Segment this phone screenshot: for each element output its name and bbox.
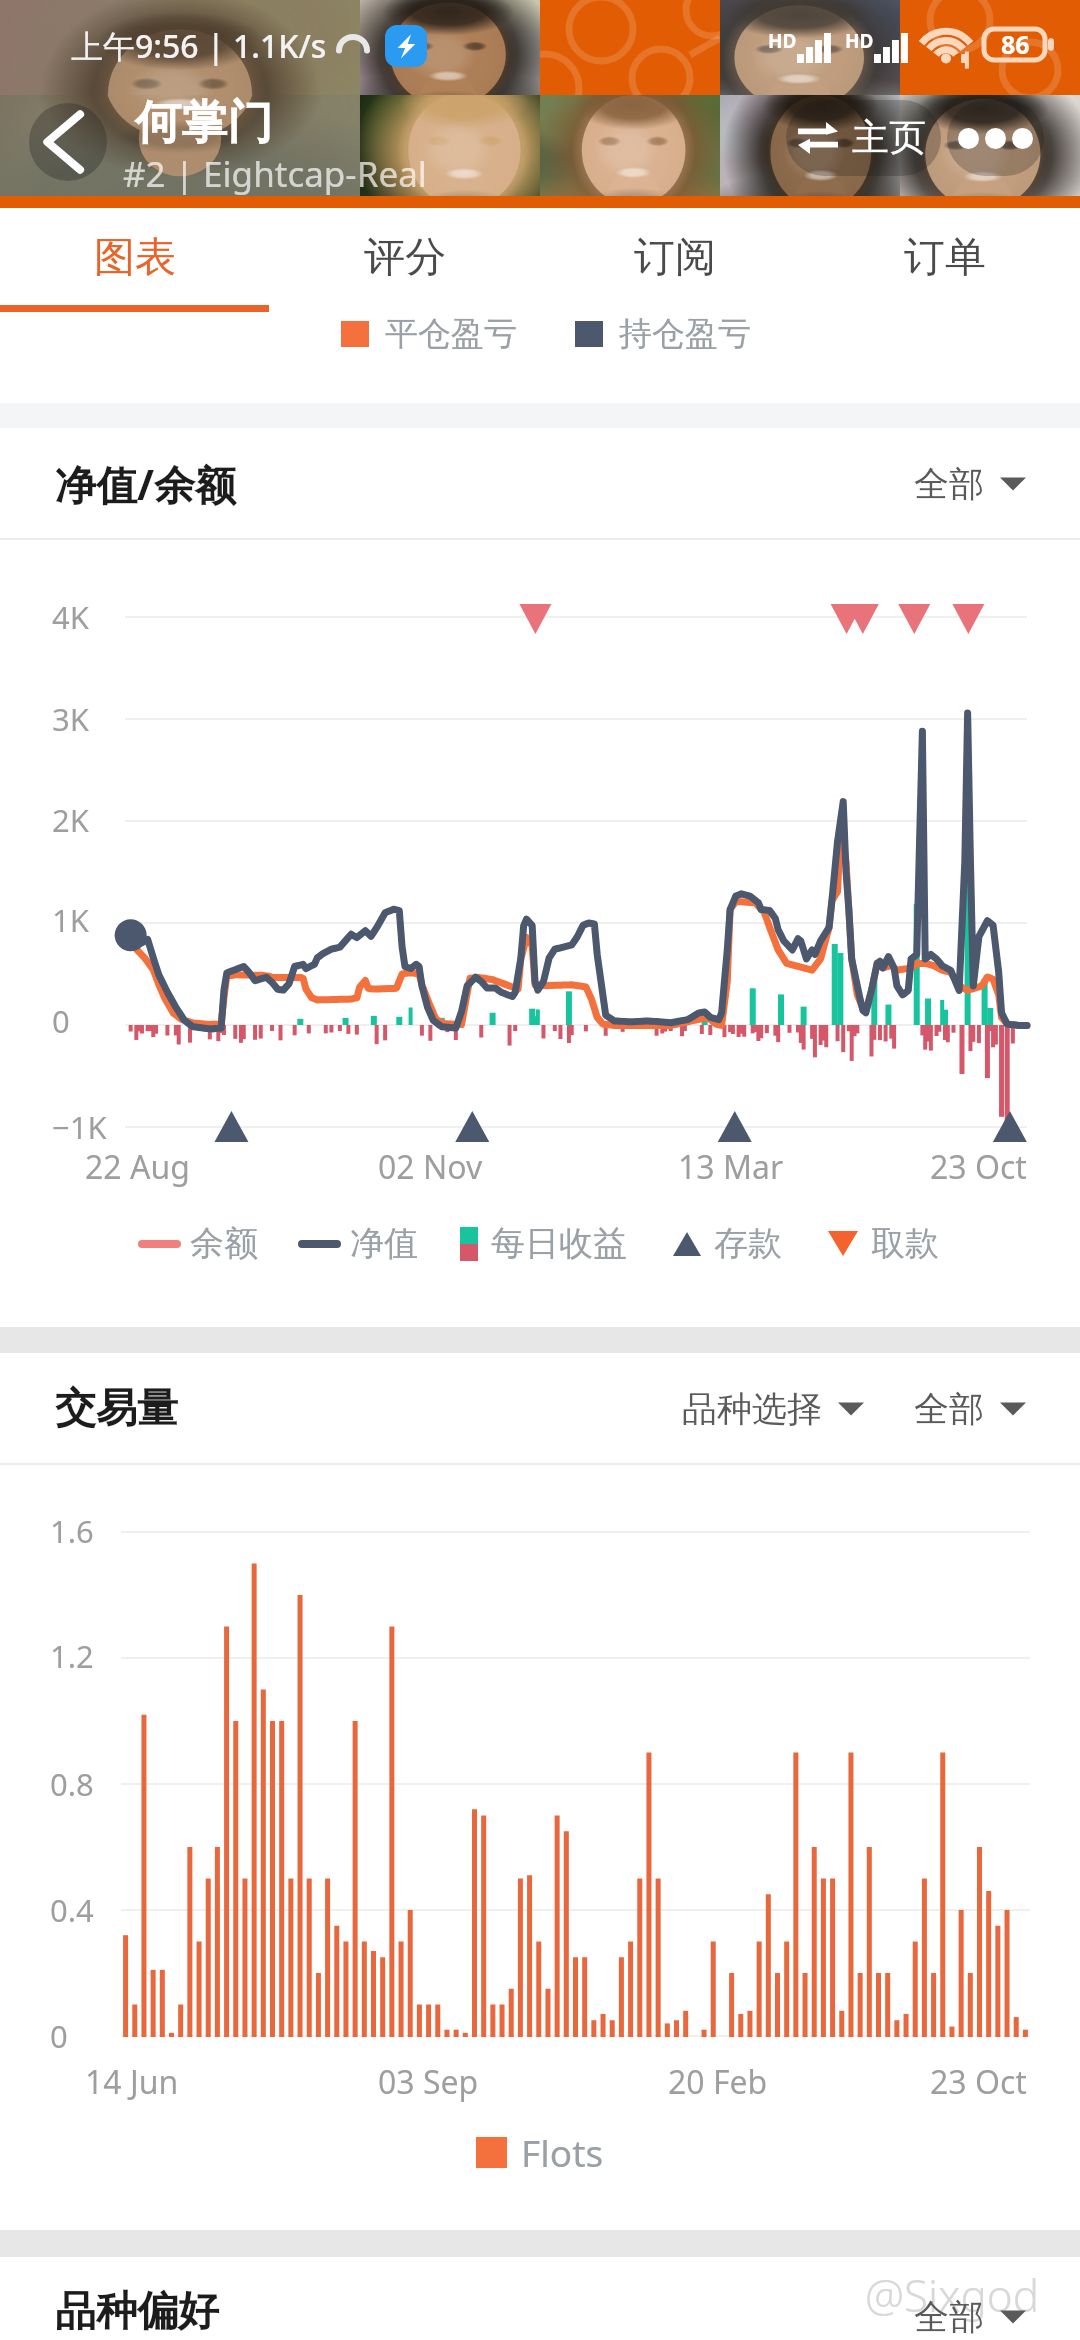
button[interactable]: More options xyxy=(947,100,1044,176)
button[interactable]: 品种选择 xyxy=(678,1387,868,1431)
staticText: 主页 xyxy=(852,114,926,161)
staticText: #2 | Eightcap-Real xyxy=(123,150,427,198)
staticText: 全部 xyxy=(914,1387,984,1431)
staticText: 0.8 xyxy=(50,1763,94,1805)
staticText: 0 xyxy=(52,1000,70,1042)
button[interactable]: 图表 xyxy=(0,208,270,313)
staticText: 14 Jun xyxy=(85,2060,179,2104)
staticText: 净值/余额 xyxy=(55,456,237,512)
staticText: 每日收益 xyxy=(491,1222,627,1265)
staticText: −1K xyxy=(52,1106,107,1148)
staticText: 交易量 xyxy=(55,1383,178,1435)
staticText: 订阅 xyxy=(634,232,716,284)
staticText: 23 Oct xyxy=(930,1145,1027,1189)
staticText: 22 Aug xyxy=(85,1145,190,1189)
staticText: 02 Nov xyxy=(378,1145,483,1189)
staticText: @Sixgod xyxy=(865,2265,1040,2325)
staticText: 4K xyxy=(52,596,89,638)
button[interactable]: 主页 xyxy=(786,100,941,176)
staticText: 存款 xyxy=(714,1222,782,1265)
button[interactable]: Back xyxy=(29,103,107,181)
staticText: 1.2 xyxy=(50,1635,94,1677)
staticText: 2K xyxy=(52,799,89,841)
staticText: Flots xyxy=(521,2127,604,2177)
staticText: 86 xyxy=(1001,27,1030,61)
staticText: 1K xyxy=(52,899,89,941)
button[interactable]: 订阅 xyxy=(540,208,810,313)
button[interactable]: 全部 xyxy=(910,1387,1030,1431)
staticText: 品种偏好 xyxy=(55,2286,219,2338)
staticText: HD xyxy=(845,28,874,54)
staticText: 品种选择 xyxy=(682,1387,822,1431)
button[interactable]: 评分 xyxy=(270,208,540,313)
staticText: 净值 xyxy=(350,1222,418,1265)
staticText: 何掌门 xyxy=(135,94,273,152)
button[interactable]: 订单 xyxy=(810,208,1080,313)
button[interactable]: 全部 xyxy=(910,462,1030,506)
staticText: 持仓盈亏 xyxy=(619,313,751,355)
staticText: 图表 xyxy=(94,232,176,284)
staticText: 上午9:56 | 1.1K/s xyxy=(71,24,327,68)
staticText: 取款 xyxy=(871,1222,939,1265)
staticText: 23 Oct xyxy=(930,2060,1027,2104)
staticText: 03 Sep xyxy=(378,2060,479,2104)
staticText: 3K xyxy=(52,698,89,740)
staticText: 20 Feb xyxy=(668,2060,768,2104)
staticText: 0.4 xyxy=(50,1889,94,1931)
staticText: 平仓盈亏 xyxy=(385,313,517,355)
staticText: 13 Mar xyxy=(678,1145,784,1189)
staticText: 1.6 xyxy=(50,1510,94,1552)
staticText: 余额 xyxy=(190,1222,258,1265)
staticText: 评分 xyxy=(364,232,446,284)
button[interactable]: 全部 xyxy=(910,2295,1030,2339)
staticText: 0 xyxy=(50,2015,68,2057)
staticText: 订单 xyxy=(904,232,986,284)
staticText: 全部 xyxy=(914,2295,984,2339)
staticText: 全部 xyxy=(914,462,984,506)
staticText: HD xyxy=(768,28,797,54)
